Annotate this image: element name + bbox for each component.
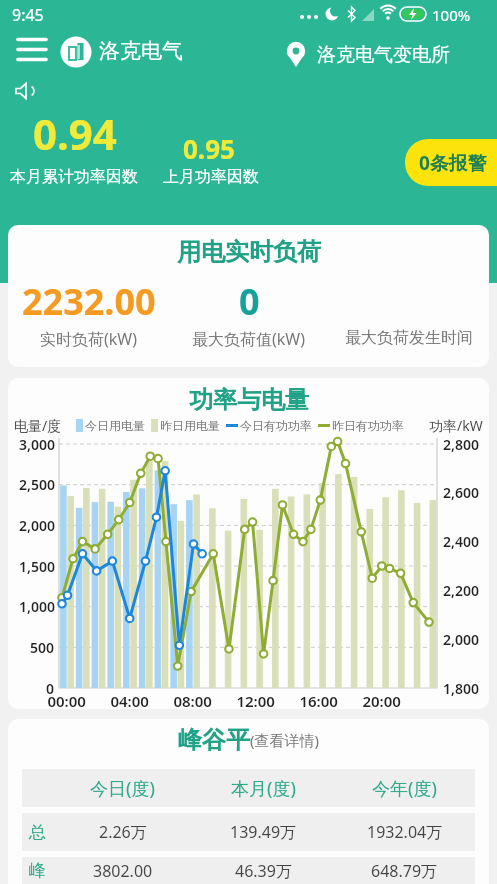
staticText: 今日有功功率 [240,418,312,433]
button[interactable]: 功率与电量 [189,385,309,415]
staticText: 100% [432,5,471,25]
button[interactable]: 总 [22,813,475,851]
staticText: 9:45 [12,4,44,26]
staticText: 139.49万 [230,821,297,843]
staticText: 2.26万 [99,821,147,843]
staticText: 0.94 [33,105,117,162]
staticText: 648.79万 [371,860,438,882]
staticText: 昨日用电量 [160,418,220,433]
staticText: 0.95 [183,131,235,166]
staticText: 3802.00 [93,860,153,882]
staticText: 最大负荷值(kW) [192,328,306,350]
staticText: 总 [29,822,46,843]
staticText: 洛克电气 [99,38,183,64]
staticText: 1932.04万 [367,821,443,843]
staticText: 洛克电气变电所 [317,43,450,67]
staticText: 上月功率因数 [163,167,259,187]
staticText: 0条报警 [419,150,487,176]
staticText: 用电实时负荷 [177,237,321,267]
staticText: 今年(度) [372,776,437,801]
staticText: 功率/kW [429,416,483,435]
staticText: 46.39万 [235,860,292,882]
button[interactable] [10,33,54,71]
staticText: 今日用电量 [85,418,145,433]
staticText: 昨日有功功率 [332,418,404,433]
staticText: 2232.00 [22,277,156,326]
staticText: 0 [239,277,260,326]
staticText: 本月累计功率因数 [10,167,138,187]
staticText: 本月(度) [231,776,296,801]
button[interactable]: 洛克电气 [60,35,183,67]
staticText: 峰谷平 [178,725,250,755]
staticText: 峰 [29,860,46,881]
button[interactable]: 0条报警 [405,139,497,186]
staticText: 实时负荷(kW) [40,328,138,350]
button[interactable]: 洛克电气变电所 [281,40,450,70]
button[interactable]: 峰谷平 [178,725,320,755]
staticText: 今日(度) [90,776,155,801]
button[interactable]: 今日(度) [22,769,475,807]
staticText: 最大负荷发生时间 [345,328,473,348]
staticText: (查看详情) [250,730,320,750]
staticText: 电量/度 [14,416,62,435]
button[interactable]: 峰 [22,857,475,884]
